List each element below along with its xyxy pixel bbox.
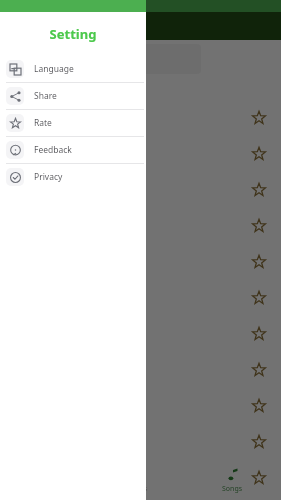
staticText: Rate bbox=[34, 117, 52, 129]
other: Songs bbox=[226, 468, 240, 482]
staticText: Songs bbox=[222, 484, 243, 494]
staticText: Share bbox=[34, 90, 57, 102]
button[interactable]: Privacy bbox=[0, 164, 146, 190]
button[interactable]: Rate bbox=[0, 110, 146, 136]
button[interactable]: Share bbox=[0, 83, 146, 109]
staticText: Language bbox=[34, 63, 74, 75]
button[interactable]: Songs bbox=[184, 466, 281, 496]
staticText: Privacy bbox=[34, 171, 63, 183]
button[interactable]: Games bbox=[87, 466, 184, 496]
staticText: Games bbox=[124, 484, 147, 494]
button[interactable]: Feedback bbox=[0, 137, 146, 163]
staticText: Feedback bbox=[34, 144, 72, 156]
button[interactable]: Language bbox=[0, 56, 146, 82]
staticText: Setting bbox=[0, 25, 146, 43]
